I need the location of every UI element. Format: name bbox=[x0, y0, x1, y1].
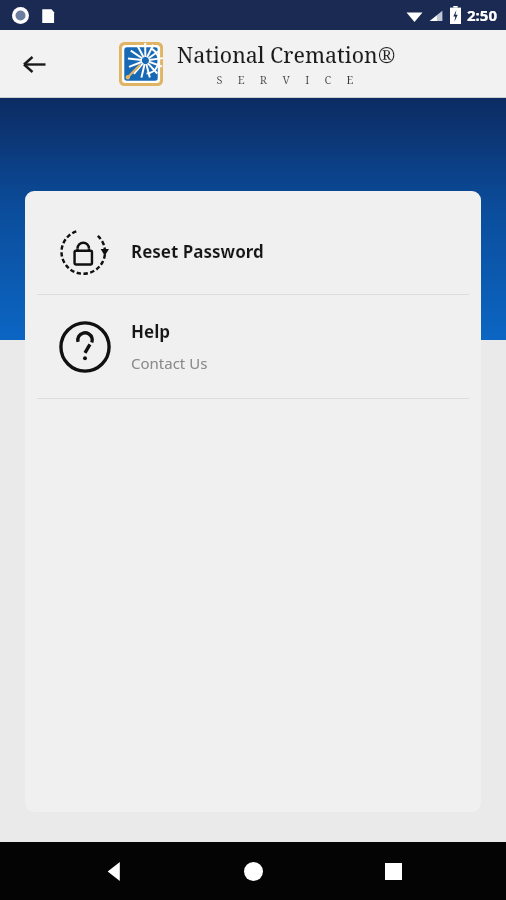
staticText: Contact Us bbox=[131, 353, 208, 373]
button[interactable]: Back bbox=[10, 40, 58, 88]
staticText: 2:50 bbox=[467, 5, 497, 25]
button[interactable]: Help bbox=[25, 295, 481, 398]
staticText: Reset Password bbox=[131, 240, 264, 263]
staticText: S E R V I C E bbox=[216, 72, 357, 87]
button[interactable]: Back bbox=[88, 845, 140, 897]
staticText: National Cremation® bbox=[177, 41, 396, 70]
staticText: Help bbox=[131, 320, 170, 343]
button[interactable]: Reset Password bbox=[25, 209, 481, 294]
button[interactable]: Recent apps bbox=[367, 845, 419, 897]
button[interactable]: Home bbox=[227, 845, 279, 897]
